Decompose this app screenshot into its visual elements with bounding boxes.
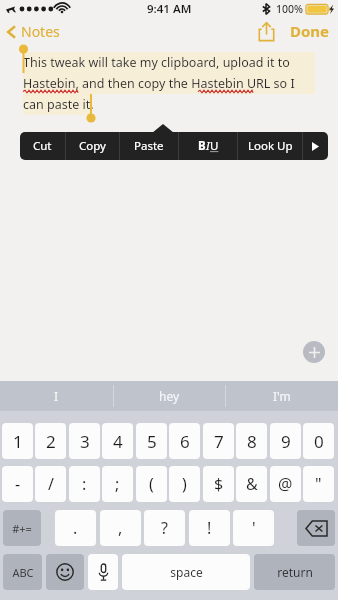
button[interactable]: Copy <box>66 132 119 160</box>
button[interactable]: ) <box>169 466 200 502</box>
button[interactable]: 1 <box>2 423 33 459</box>
button[interactable]: More <box>303 132 328 160</box>
button[interactable]: Dictation <box>88 554 118 590</box>
staticText: return <box>277 564 313 580</box>
staticText: Hastebin, and then copy the Hastebin URL… <box>23 75 295 92</box>
staticText: Cut <box>33 138 52 154</box>
button[interactable]: I <box>0 381 113 411</box>
button[interactable]: return <box>254 554 335 590</box>
button[interactable]: 0 <box>303 423 334 459</box>
staticText: I <box>54 388 59 404</box>
staticText: 2 <box>46 430 56 453</box>
staticText: & <box>246 473 258 495</box>
button[interactable]: Add attachment <box>303 341 325 363</box>
staticText: . <box>73 517 78 539</box>
button[interactable]: Done <box>282 18 338 44</box>
staticText: 4 <box>113 430 123 453</box>
staticText: $ <box>214 473 224 495</box>
button[interactable]: ? <box>144 510 185 546</box>
button[interactable]: Cut <box>20 132 65 160</box>
staticText: hey <box>159 388 180 404</box>
button[interactable]: 3 <box>69 423 100 459</box>
button[interactable]: : <box>69 466 100 502</box>
staticText: can paste it. <box>23 96 94 113</box>
staticText: 7 <box>214 430 224 453</box>
staticText: @ <box>278 473 293 495</box>
staticText: Done <box>290 21 330 41</box>
staticText: Notes <box>21 22 60 41</box>
button[interactable]: Notes <box>0 19 68 44</box>
staticText: B <box>198 138 206 154</box>
button[interactable]: ' <box>233 510 274 546</box>
staticText: ! <box>207 517 212 539</box>
button[interactable]: Emoji <box>46 554 84 590</box>
button[interactable]: I'm <box>226 381 338 411</box>
button[interactable]: " <box>303 466 334 502</box>
staticText: This tweak will take my clipboard, uploa… <box>23 54 290 71</box>
button[interactable]: ( <box>136 466 167 502</box>
staticText: 9:41 AM <box>147 1 192 17</box>
button[interactable]: B <box>179 132 237 160</box>
button[interactable]: 7 <box>203 423 234 459</box>
button[interactable]: This tweak will take my clipboard, uploa… <box>23 52 295 115</box>
staticText: 5 <box>147 430 157 453</box>
button[interactable]: 9 <box>270 423 301 459</box>
button[interactable]: Look Up <box>238 132 302 160</box>
staticText: U <box>210 138 219 154</box>
button[interactable]: Paste <box>120 132 178 160</box>
button[interactable]: / <box>35 466 66 502</box>
staticText: #+= <box>12 521 32 536</box>
staticText: 8 <box>247 430 257 453</box>
staticText: , <box>118 517 123 539</box>
staticText: - <box>15 473 21 495</box>
staticText: " <box>315 473 322 495</box>
button[interactable]: , <box>100 510 141 546</box>
button[interactable]: Share <box>250 18 282 44</box>
staticText: 0 <box>314 430 324 453</box>
button[interactable]: ABC <box>3 554 42 590</box>
button[interactable]: Backspace <box>297 510 335 546</box>
button[interactable]: space <box>122 554 250 590</box>
staticText: Paste <box>134 138 164 154</box>
staticText: I'm <box>273 388 291 404</box>
button[interactable]: . <box>55 510 96 546</box>
button[interactable]: @ <box>270 466 301 502</box>
staticText: ABC <box>12 565 34 580</box>
staticText: Look Up <box>248 138 293 154</box>
staticText: ' <box>252 517 256 539</box>
button[interactable]: 8 <box>236 423 267 459</box>
staticText: / <box>48 473 54 495</box>
button[interactable]: 2 <box>35 423 66 459</box>
staticText: 6 <box>180 430 190 453</box>
staticText: I <box>206 138 210 154</box>
button[interactable]: ; <box>102 466 133 502</box>
staticText: : <box>82 473 87 495</box>
staticText: 9 <box>281 430 291 453</box>
staticText: ( <box>149 473 154 495</box>
button[interactable]: 5 <box>136 423 167 459</box>
button[interactable]: #+= <box>3 510 41 546</box>
button[interactable]: - <box>2 466 33 502</box>
button[interactable]: & <box>236 466 267 502</box>
staticText: ? <box>161 517 168 539</box>
button[interactable]: 6 <box>169 423 200 459</box>
button[interactable]: 4 <box>102 423 133 459</box>
staticText: ) <box>182 473 187 495</box>
button[interactable]: hey <box>114 381 225 411</box>
staticText: Copy <box>79 138 106 154</box>
staticText: ; <box>115 473 120 495</box>
staticText: 1 <box>13 430 23 453</box>
button[interactable]: $ <box>203 466 234 502</box>
button[interactable]: ! <box>189 510 230 546</box>
staticText: 3 <box>80 430 90 453</box>
staticText: space <box>170 564 203 580</box>
staticText: 100% <box>276 2 303 16</box>
